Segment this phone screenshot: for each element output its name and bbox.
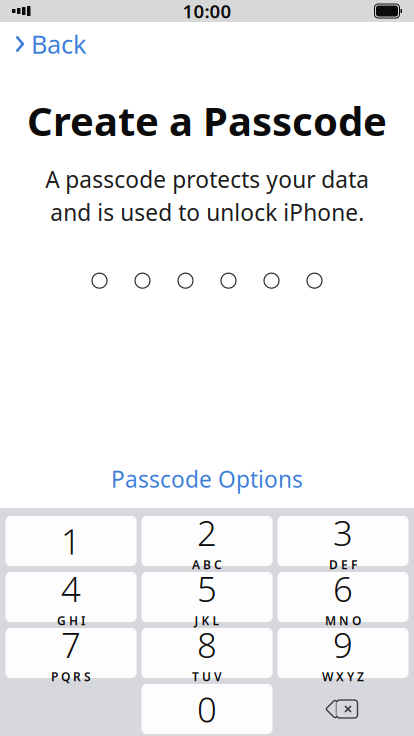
staticText: 9 [333,621,353,667]
button[interactable]: 0 [141,684,272,734]
button[interactable]: 5 [141,572,272,622]
button[interactable]: 1 [5,516,136,566]
button[interactable]: 8 [141,628,272,678]
staticText: Back [31,27,87,61]
staticText: 1 [61,518,81,564]
staticText: D E F [329,557,357,572]
staticText: 10:00 [182,0,231,23]
staticText: G H I [57,613,85,628]
button[interactable]: 2 [141,516,272,566]
button[interactable]: 7 [5,628,136,678]
staticText: P Q R S [51,669,91,684]
staticText: 2 [197,509,217,555]
staticText: Create a Passcode [27,94,387,147]
staticText: W X Y Z [322,669,364,684]
staticText: M N O [325,613,361,628]
staticText: T U V [192,669,222,684]
button[interactable]: 6 [277,572,408,622]
staticText: 7 [61,621,81,667]
staticText: 4 [61,565,81,611]
staticText: A B C [192,557,222,572]
staticText: A passcode protects your data and is use… [45,164,369,227]
button[interactable]: Passcode Options [0,462,414,496]
button[interactable]: 9 [277,628,408,678]
button[interactable]: Back [0,19,97,69]
staticText: 3 [333,509,353,555]
staticText: Passcode Options [111,464,303,494]
staticText: 0 [197,686,217,732]
button[interactable]: Delete [277,684,408,734]
staticText: 6 [333,565,353,611]
staticText: J K L [194,613,219,628]
staticText: 8 [197,621,217,667]
button[interactable]: 4 [5,572,136,622]
staticText: 5 [197,565,217,611]
button[interactable]: 3 [277,516,408,566]
